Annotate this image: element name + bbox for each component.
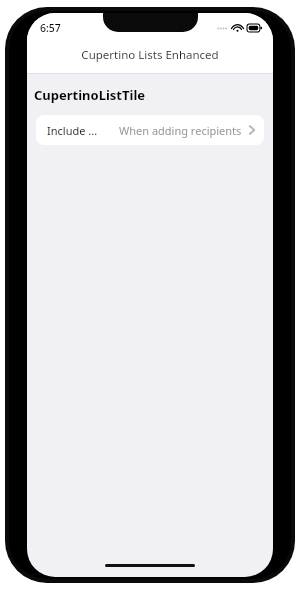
other: Open Include options xyxy=(247,123,256,137)
staticText: When adding recipients xyxy=(119,123,242,138)
button[interactable]: Include ... xyxy=(36,115,264,145)
staticText: Include ... xyxy=(47,123,98,138)
staticText: Cupertino Lists Enhanced xyxy=(81,47,219,63)
staticText: 6:57 xyxy=(40,21,61,35)
staticText: CupertinoListTile xyxy=(34,86,146,104)
